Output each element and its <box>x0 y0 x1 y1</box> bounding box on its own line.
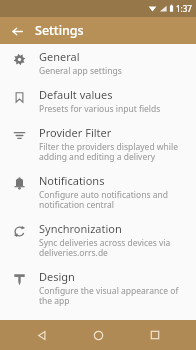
button[interactable]: Recents <box>140 320 170 350</box>
staticText: Synchronization <box>39 221 122 236</box>
staticText: Design <box>39 269 75 284</box>
staticText: Provider Filter <box>39 125 112 140</box>
staticText: General app settings <box>39 65 122 77</box>
button[interactable]: Back <box>27 320 57 350</box>
button[interactable]: Synchronization <box>0 216 196 264</box>
button[interactable]: General <box>0 44 196 82</box>
staticText: Notifications <box>39 173 105 188</box>
staticText: Default values <box>39 87 113 102</box>
staticText: General <box>39 49 80 64</box>
button[interactable]: Back <box>7 21 27 41</box>
staticText: Filter the providers displayed while add… <box>39 141 186 163</box>
staticText: 1:37 <box>176 3 192 14</box>
button[interactable]: Provider Filter <box>0 120 196 168</box>
staticText: Sync deliveries across devices via deliv… <box>39 237 186 259</box>
button[interactable]: Home <box>83 320 113 350</box>
button[interactable]: Design <box>0 264 196 312</box>
staticText: Configure auto notifications and notific… <box>39 189 186 211</box>
staticText: Presets for various input fields <box>39 103 161 115</box>
button[interactable]: Default values <box>0 82 196 120</box>
staticText: Settings <box>35 22 84 39</box>
button[interactable]: Notifications <box>0 168 196 216</box>
staticText: Configure the visual appearance of the a… <box>39 285 186 307</box>
